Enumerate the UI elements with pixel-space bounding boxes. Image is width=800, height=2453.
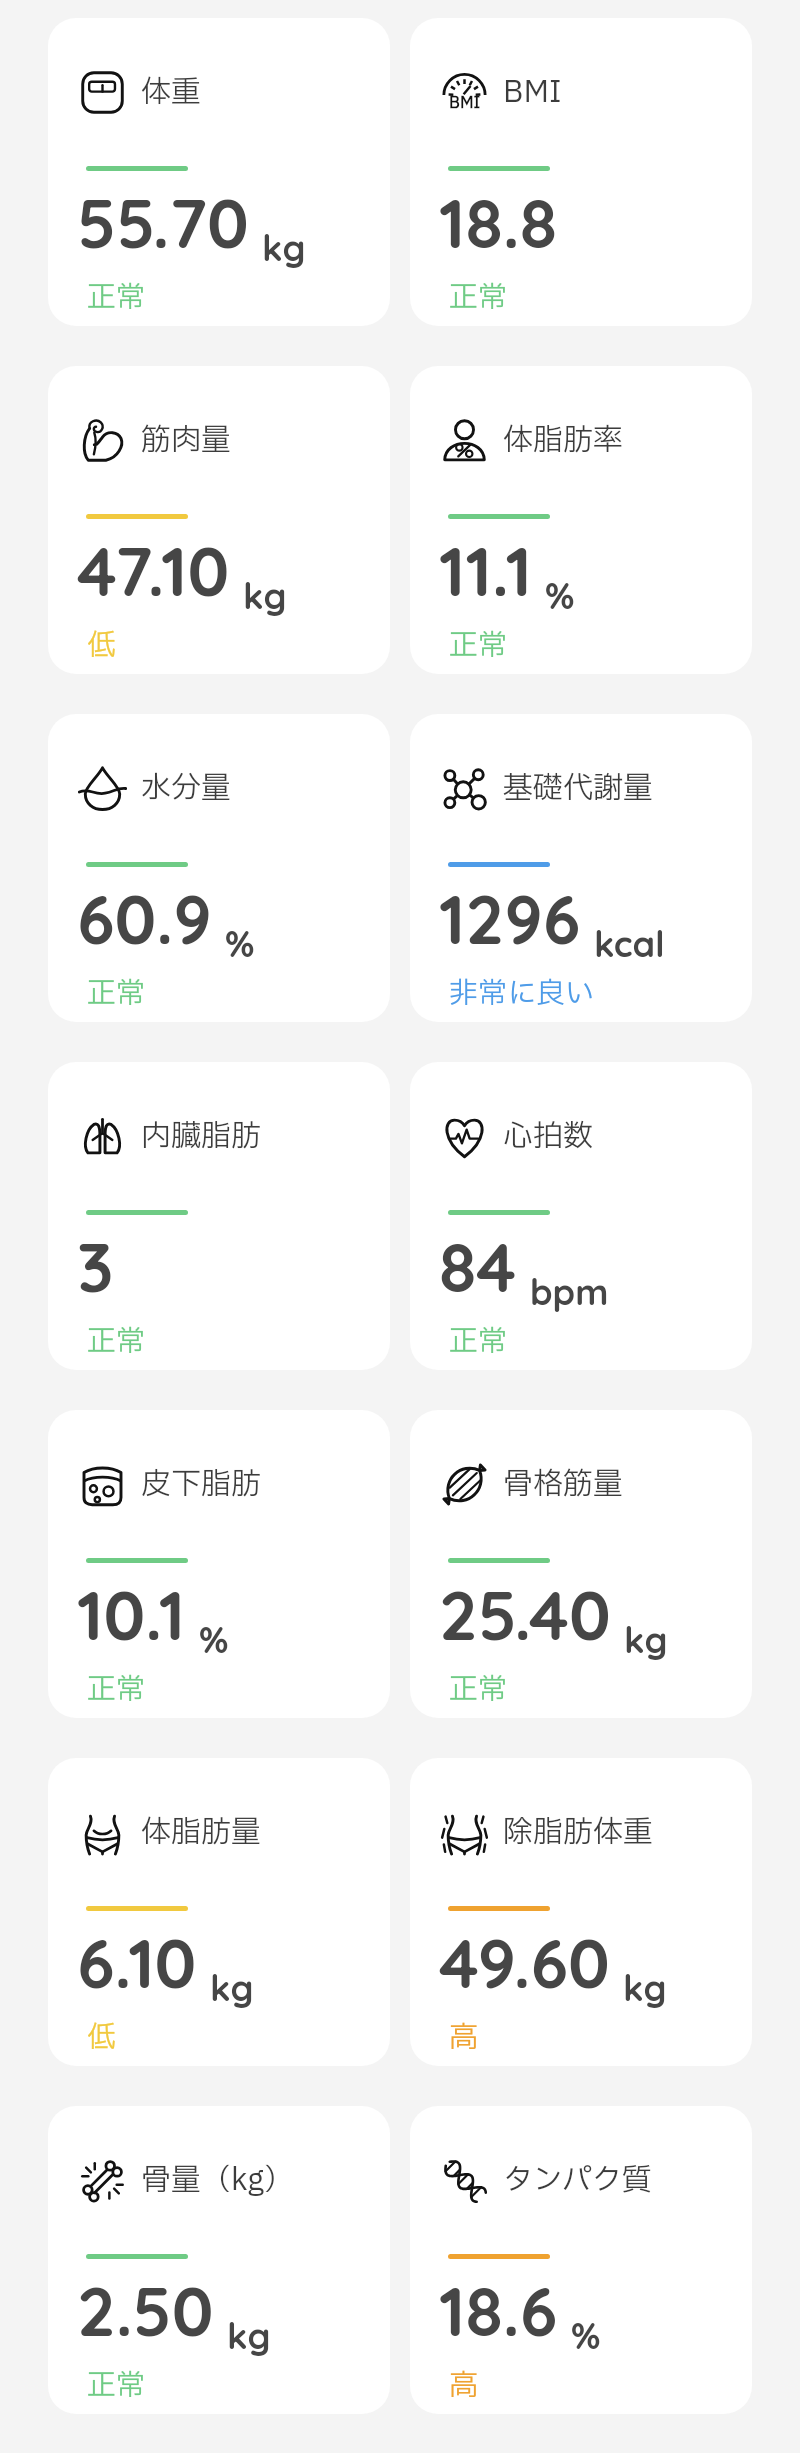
button[interactable]: 皮下脂肪 bbox=[48, 1410, 390, 1718]
staticText: 正常 bbox=[87, 1320, 146, 1363]
staticText: 非常に良い bbox=[449, 972, 595, 1015]
button[interactable]: 体重 bbox=[48, 18, 390, 326]
button[interactable]: 除脂肪体重 bbox=[410, 1758, 752, 2066]
staticText: kg bbox=[623, 1965, 667, 2010]
staticText: 水分量 bbox=[141, 766, 231, 811]
staticText: kg bbox=[262, 225, 306, 270]
staticText: 低 bbox=[87, 2016, 117, 2059]
staticText: 1296 bbox=[439, 876, 581, 961]
staticText: 55.70 bbox=[77, 180, 249, 265]
staticText: 低 bbox=[87, 624, 117, 667]
button[interactable]: 体脂肪率 bbox=[410, 366, 752, 674]
staticText: 18.6 bbox=[439, 2268, 558, 2353]
staticText: 筋肉量 bbox=[141, 418, 231, 463]
staticText: kg bbox=[227, 2313, 271, 2358]
staticText: kcal bbox=[594, 921, 665, 966]
staticText: % bbox=[225, 921, 255, 966]
staticText: 皮下脂肪 bbox=[141, 1462, 261, 1507]
staticText: 正常 bbox=[449, 1668, 508, 1711]
staticText: 正常 bbox=[87, 972, 146, 1015]
staticText: kg bbox=[624, 1617, 668, 1662]
button[interactable]: 骨量（kg） bbox=[48, 2106, 390, 2414]
staticText: 正常 bbox=[87, 2364, 146, 2407]
staticText: 25.40 bbox=[439, 1572, 611, 1657]
staticText: 体脂肪量 bbox=[141, 1810, 261, 1855]
staticText: BMI bbox=[449, 91, 481, 115]
staticText: 正常 bbox=[449, 1320, 508, 1363]
staticText: 正常 bbox=[87, 1668, 146, 1711]
staticText: 骨格筋量 bbox=[503, 1462, 623, 1507]
staticText: 体重 bbox=[141, 70, 201, 115]
staticText: BMI bbox=[503, 70, 562, 115]
staticText: 基礎代謝量 bbox=[503, 766, 653, 811]
staticText: 3 bbox=[77, 1224, 114, 1309]
staticText: % bbox=[571, 2313, 601, 2358]
staticText: 2.50 bbox=[77, 2268, 214, 2353]
staticText: 49.60 bbox=[439, 1920, 610, 2005]
staticText: bpm bbox=[530, 1269, 609, 1314]
button[interactable]: 基礎代謝量 bbox=[410, 714, 752, 1022]
staticText: % bbox=[199, 1617, 229, 1662]
button[interactable]: BMI bbox=[410, 18, 752, 326]
button[interactable]: 筋肉量 bbox=[48, 366, 390, 674]
button[interactable]: 水分量 bbox=[48, 714, 390, 1022]
staticText: 47.10 bbox=[77, 528, 230, 613]
staticText: 心拍数 bbox=[503, 1114, 593, 1159]
staticText: kg bbox=[210, 1965, 254, 2010]
button[interactable]: 内臓脂肪 bbox=[48, 1062, 390, 1370]
staticText: 内臓脂肪 bbox=[141, 1114, 261, 1159]
staticText: 11.1 bbox=[439, 528, 532, 613]
staticText: 高 bbox=[449, 2016, 479, 2059]
staticText: 除脂肪体重 bbox=[503, 1810, 653, 1855]
staticText: 正常 bbox=[449, 624, 508, 667]
button[interactable]: 骨格筋量 bbox=[410, 1410, 752, 1718]
staticText: 正常 bbox=[449, 276, 508, 319]
button[interactable]: 体脂肪量 bbox=[48, 1758, 390, 2066]
staticText: kg bbox=[243, 573, 287, 618]
staticText: 体脂肪率 bbox=[503, 418, 623, 463]
staticText: 高 bbox=[449, 2364, 479, 2407]
staticText: 60.9 bbox=[77, 876, 212, 961]
staticText: 骨量（kg） bbox=[141, 2158, 294, 2203]
staticText: % bbox=[545, 573, 575, 618]
staticText: 6.10 bbox=[77, 1920, 197, 2005]
staticText: 10.1 bbox=[77, 1572, 186, 1657]
button[interactable]: タンパク質 bbox=[410, 2106, 752, 2414]
staticText: 18.8 bbox=[439, 180, 557, 265]
staticText: タンパク質 bbox=[503, 2158, 652, 2203]
staticText: 正常 bbox=[87, 276, 146, 319]
button[interactable]: 心拍数 bbox=[410, 1062, 752, 1370]
staticText: 84 bbox=[439, 1224, 517, 1309]
